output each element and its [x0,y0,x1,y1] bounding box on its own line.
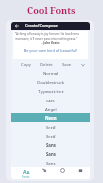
staticText: Sans [46,151,56,157]
button[interactable]: Expand [80,62,86,68]
button[interactable]: Save [61,62,73,68]
staticText: Create/Compose [25,23,58,29]
staticText: Doublestruck [37,79,64,85]
button[interactable]: Delete [39,62,54,68]
staticText: Sans [46,142,56,148]
staticText: Serif [46,133,56,139]
button[interactable]: Copy [20,62,32,68]
staticText: Delete [40,62,53,68]
staticText: Save [62,62,72,68]
staticText: Typewriter [38,88,64,94]
staticText: Normal [43,70,59,76]
button[interactable]: Sans [11,140,90,149]
button[interactable]: Art [35,167,53,179]
button[interactable]: Emoji [53,167,71,179]
button[interactable]: Doublestruck [11,77,90,86]
staticText: Serif [46,124,56,130]
button[interactable]: Back [14,23,20,29]
staticText: Copy [21,62,31,68]
staticText: ᴄᴀᴘꜱ [46,97,55,103]
button[interactable]: Fonts [16,167,35,179]
button[interactable]: Normal [11,68,90,77]
staticText: Neon [45,115,57,121]
button[interactable]: Typewriter [11,86,90,95]
staticText: Be your own kind of beautiful! [15,48,86,53]
button[interactable]: ᴄᴀᴘꜱ [11,95,90,104]
staticText: - John Keats [15,41,86,45]
staticText: Sans [46,160,56,166]
button[interactable]: Serif [11,122,90,131]
button[interactable]: Angel [11,104,90,113]
button[interactable]: Neon [11,113,90,122]
button[interactable]: Sans [11,149,90,158]
staticText: Cool Fonts [27,4,76,17]
staticText: “A thing of beauty is joy forever. Its l… [15,32,86,41]
staticText: Fonts [22,175,30,179]
button[interactable]: Sans [11,158,90,167]
button[interactable]: Saved [71,167,89,179]
staticText: Aᴀ [23,168,30,175]
staticText: Angel [45,106,57,112]
button[interactable]: Serif [11,131,90,140]
